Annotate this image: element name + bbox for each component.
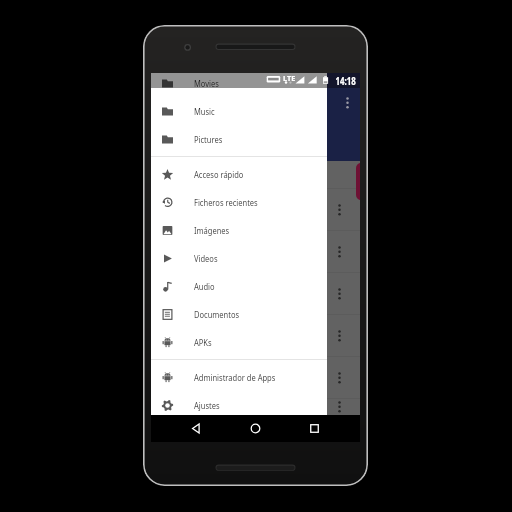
button[interactable]: Home [226, 415, 285, 442]
staticText: Videos [194, 252, 218, 265]
staticText: Documentos [194, 308, 240, 321]
button[interactable]: Music [151, 97, 327, 125]
button[interactable]: Documentos [151, 300, 327, 328]
button[interactable]: Audio [151, 272, 327, 300]
button[interactable]: Acceso rápido [151, 160, 327, 188]
button[interactable]: More options [340, 93, 354, 113]
button[interactable]: Ajustes [151, 391, 327, 419]
button[interactable]: Imágenes [151, 216, 327, 244]
button[interactable]: More options [332, 368, 346, 388]
button[interactable]: APKs [151, 328, 327, 356]
staticText: LTE [283, 73, 296, 83]
button[interactable]: More options [151, 189, 360, 230]
button[interactable]: Pictures [151, 125, 327, 153]
button[interactable]: More options [332, 326, 346, 346]
staticText: Administrador de Apps [194, 371, 276, 384]
staticText: Acceso rápido [194, 168, 244, 181]
staticText: APKs [194, 336, 212, 349]
staticText: Pictures [194, 133, 223, 146]
button[interactable]: More options [151, 315, 360, 356]
staticText: 14:18 [335, 74, 356, 88]
button[interactable]: Recents [285, 415, 344, 442]
staticText: Ajustes [194, 399, 220, 412]
button[interactable]: Scroll handle [356, 163, 360, 200]
button[interactable]: More options [151, 231, 360, 272]
button[interactable]: More options [151, 399, 360, 415]
button[interactable]: More options [332, 399, 346, 415]
button[interactable]: Back [167, 415, 226, 442]
button[interactable]: More options [332, 242, 346, 262]
button[interactable]: Administrador de Apps [151, 363, 327, 391]
staticText: Music [194, 105, 215, 118]
button[interactable]: Videos [151, 244, 327, 272]
staticText: Imágenes [194, 224, 229, 237]
button[interactable]: Movies [151, 73, 327, 97]
button[interactable]: Ficheros recientes [151, 188, 327, 216]
button[interactable]: More options [332, 284, 346, 304]
button[interactable]: More options [151, 273, 360, 314]
staticText: Ficheros recientes [194, 196, 258, 209]
button[interactable]: More options [151, 357, 360, 398]
staticText: Audio [194, 280, 215, 293]
staticText: Movies [194, 77, 219, 90]
button[interactable]: More options [332, 200, 346, 220]
